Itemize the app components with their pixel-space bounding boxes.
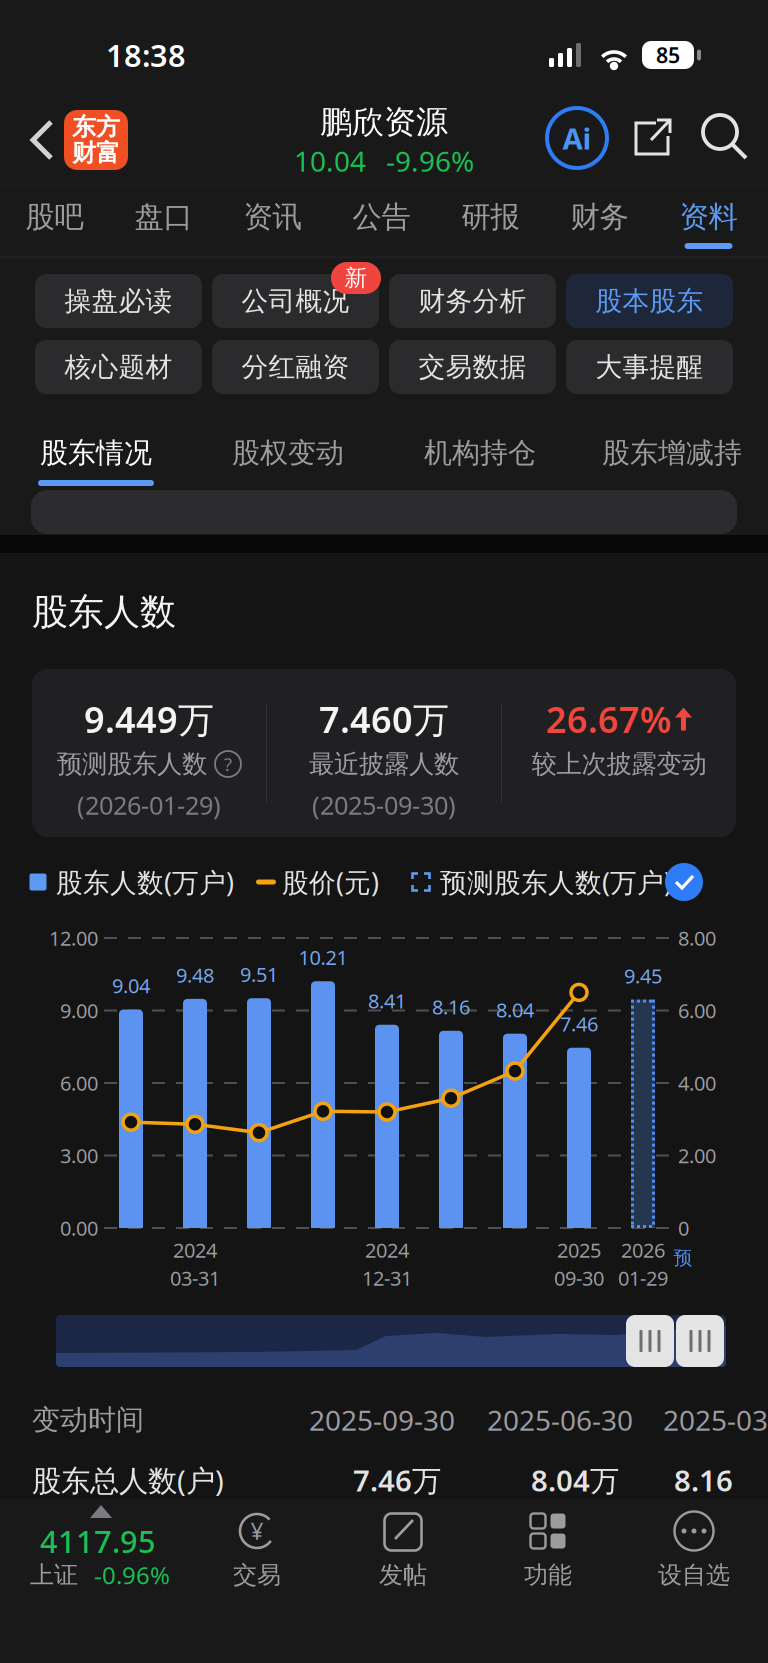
staticText: 财富 [72, 138, 120, 168]
staticText: 交易 [233, 1560, 281, 1590]
staticText: 26.67% [546, 695, 672, 743]
staticText: 2025-06-30 [487, 1401, 633, 1439]
button[interactable]: 股东情况 [0, 425, 192, 515]
button[interactable]: Range end [676, 1315, 724, 1367]
staticText: 新 [344, 264, 367, 292]
staticText: 发帖 [379, 1560, 427, 1590]
staticText: 0 [678, 1215, 689, 1241]
staticText: 股东总人数(户) [32, 1460, 224, 1499]
staticText: 公告 [352, 199, 410, 235]
staticText: 8.04万 [531, 1460, 619, 1499]
button[interactable]: 发帖 [331, 1499, 475, 1609]
button[interactable]: 股本股东 [566, 262, 733, 328]
button[interactable]: 股吧 [0, 186, 109, 256]
staticText: 股东人数 [32, 590, 176, 634]
staticText: 股价(元) [282, 864, 379, 900]
staticText: -0.96% [94, 1559, 170, 1591]
button[interactable]: 交易数据 [389, 328, 556, 394]
staticText: 85 [656, 41, 680, 69]
button[interactable]: Toggle forecast series [666, 864, 702, 900]
button[interactable]: AI assistant [546, 107, 608, 169]
button[interactable]: 资料 [654, 186, 763, 256]
staticText: 核心题材 [64, 351, 172, 383]
button[interactable]: 4117.95 [0, 1499, 200, 1609]
button[interactable]: 财务 [545, 186, 654, 256]
button[interactable]: 股权变动 [192, 425, 384, 515]
staticText: 东方 [72, 112, 120, 142]
button[interactable]: 设自选 [622, 1499, 766, 1609]
staticText: 设自选 [658, 1560, 730, 1590]
staticText: 8.00 [678, 925, 716, 951]
button[interactable]: East Money home [64, 110, 128, 170]
button[interactable]: 盘口 [109, 186, 218, 256]
staticText: 6.00 [60, 1070, 98, 1096]
staticText: 股东情况 [40, 436, 152, 470]
staticText: 18:38 [106, 35, 186, 75]
staticText: 4117.95 [40, 1521, 156, 1561]
staticText: 10.21 [298, 944, 347, 971]
button[interactable]: Share [619, 98, 685, 178]
staticText: 9.45 [624, 962, 662, 989]
button[interactable]: 操盘必读 [35, 262, 202, 328]
staticText: 9.04 [112, 972, 150, 999]
staticText: 9.51 [240, 961, 278, 987]
staticText: 变动时间 [32, 1403, 144, 1437]
staticText: 8.16 [674, 1460, 733, 1499]
staticText: 6.00 [678, 997, 716, 1024]
staticText: 2024 [365, 1237, 409, 1263]
staticText: 2024 [173, 1237, 217, 1263]
staticText: -9.96% [386, 142, 474, 180]
button[interactable]: 财务分析 [389, 262, 556, 328]
staticText: 最近披露人数 [309, 748, 459, 779]
staticText: 03-31 [170, 1265, 220, 1291]
button[interactable]: 股东增减持 [576, 425, 768, 515]
staticText: 预测股东人数(万户) [440, 864, 672, 900]
staticText: 09-30 [554, 1265, 604, 1291]
staticText: 2025-09-30 [309, 1401, 455, 1439]
staticText: 鹏欣资源 [320, 102, 448, 142]
button[interactable]: Back [8, 94, 76, 186]
button[interactable]: 公司概况 [212, 262, 379, 328]
staticText: 2025 [557, 1237, 601, 1263]
staticText: 预 [673, 1246, 692, 1269]
staticText: 上证 [30, 1560, 78, 1590]
button[interactable]: 分红融资 [212, 328, 379, 394]
staticText: 功能 [524, 1560, 572, 1590]
staticText: 2025-03 [663, 1401, 768, 1439]
button[interactable]: ¥ [185, 1499, 329, 1609]
staticText: 9.48 [176, 962, 214, 988]
staticText: ¥ [250, 1516, 263, 1546]
staticText: 较上次披露变动 [531, 748, 706, 779]
button[interactable]: 公告 [327, 186, 436, 256]
staticText: 3.00 [60, 1142, 98, 1169]
button[interactable]: 大事提醒 [566, 328, 733, 394]
staticText: 0.00 [60, 1215, 98, 1241]
staticText: 资讯 [243, 199, 301, 235]
button[interactable]: 机构持仓 [384, 425, 576, 515]
staticText: 分红融资 [241, 351, 349, 383]
staticText: 7.46万 [353, 1460, 441, 1499]
staticText: 股吧 [25, 199, 83, 235]
button[interactable]: Search [693, 98, 759, 178]
staticText: 8.04 [496, 996, 534, 1023]
staticText: 4.00 [678, 1070, 716, 1096]
button[interactable]: 功能 [476, 1499, 620, 1609]
button[interactable]: 核心题材 [35, 328, 202, 394]
staticText: 预测股东人数 [57, 748, 207, 779]
staticText: ? [224, 752, 232, 776]
staticText: 财务分析 [418, 285, 526, 317]
button[interactable]: 研报 [436, 186, 545, 256]
staticText: 股权变动 [232, 436, 344, 470]
staticText: 10.04 [294, 142, 366, 180]
staticText: 机构持仓 [424, 436, 536, 470]
staticText: 7.460万 [319, 695, 449, 743]
staticText: 9.449万 [84, 695, 214, 743]
staticText: 盘口 [134, 199, 192, 235]
button[interactable]: Range start [626, 1315, 674, 1367]
staticText: 股东增减持 [602, 436, 742, 470]
staticText: 公司概况 [241, 285, 349, 317]
staticText: 12-31 [362, 1265, 412, 1291]
button[interactable]: 资讯 [218, 186, 327, 256]
staticText: 交易数据 [418, 351, 526, 383]
staticText: 8.41 [368, 987, 406, 1014]
